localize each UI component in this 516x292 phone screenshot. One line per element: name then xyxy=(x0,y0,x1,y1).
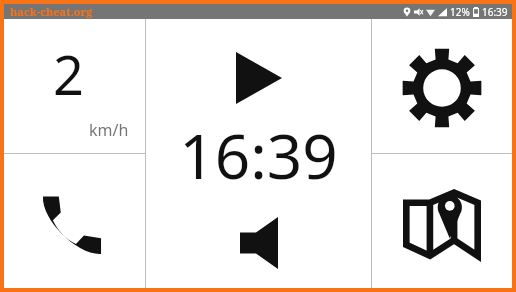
button[interactable]: Settings xyxy=(372,19,512,153)
staticText: 16:39 xyxy=(179,113,338,197)
button[interactable]: Phone xyxy=(4,154,145,288)
staticText: 2 xyxy=(53,37,84,111)
staticText: 16:39 xyxy=(482,5,508,19)
button[interactable]: Map xyxy=(372,154,512,288)
staticText: km/h xyxy=(89,119,129,141)
button[interactable]: 2 xyxy=(4,19,145,153)
staticText: hack-cheat.org xyxy=(10,4,93,19)
button[interactable]: Play xyxy=(146,19,371,153)
staticText: 12% xyxy=(450,5,470,19)
button[interactable]: Volume xyxy=(146,153,371,288)
